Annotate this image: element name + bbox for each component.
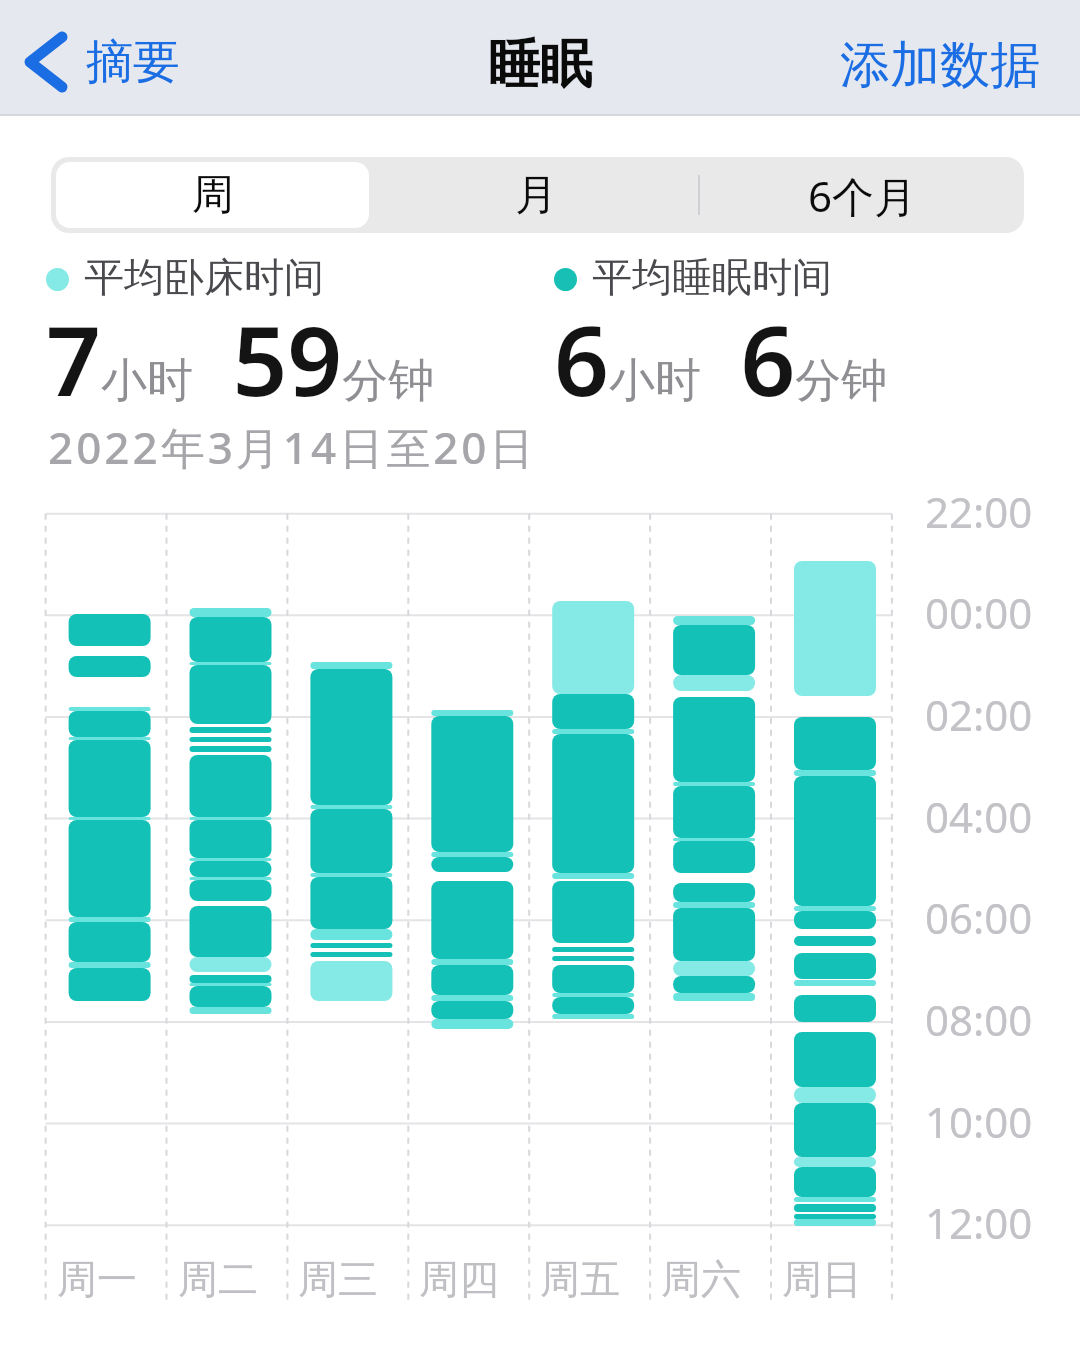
staticText: 平均卧床时间	[84, 252, 324, 302]
staticText: 6个月	[808, 167, 917, 224]
staticText: 06:00	[925, 889, 1033, 946]
staticText: 周五	[540, 1254, 620, 1304]
staticText: 睡眠	[488, 32, 592, 98]
button[interactable]: 摘要	[18, 22, 180, 102]
staticText: 周一	[57, 1254, 137, 1304]
staticText: 周六	[661, 1254, 741, 1304]
button[interactable]: 添加数据	[840, 34, 1040, 97]
staticText: 平均睡眠时间	[592, 252, 832, 302]
staticText: 周日	[782, 1254, 862, 1304]
staticText: 6小时 6分钟	[554, 293, 888, 424]
staticText: 08:00	[925, 991, 1033, 1048]
staticText: 2022年3月14日至20日	[48, 417, 537, 477]
staticText: 周三	[298, 1254, 378, 1304]
staticText: 周	[192, 169, 234, 222]
button[interactable]: 6个月	[700, 157, 1024, 233]
staticText: 添加数据	[840, 34, 1040, 97]
staticText: 12:00	[925, 1194, 1033, 1251]
staticText: 周四	[419, 1254, 499, 1304]
staticText: 02:00	[925, 686, 1033, 743]
button[interactable]: 周	[56, 162, 369, 228]
button[interactable]: 月	[374, 157, 698, 233]
staticText: 7小时 59分钟	[46, 293, 435, 424]
staticText: 周二	[178, 1254, 258, 1304]
staticText: 10:00	[925, 1093, 1033, 1150]
staticText: 04:00	[925, 788, 1033, 845]
staticText: 00:00	[925, 584, 1033, 641]
staticText: 22:00	[925, 483, 1033, 540]
staticText: 摘要	[86, 33, 180, 92]
staticText: 月	[515, 169, 557, 222]
